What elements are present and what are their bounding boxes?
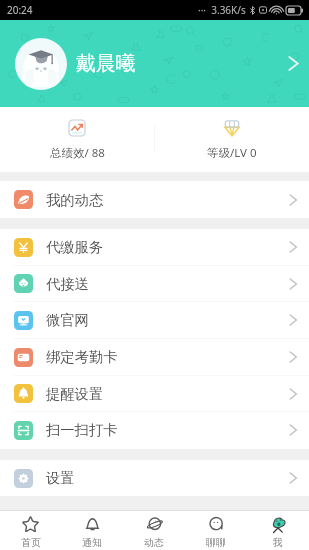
button[interactable]: 微官网 — [0, 302, 309, 338]
button[interactable]: 戴晨曦 — [0, 20, 309, 107]
button[interactable]: 绑定考勤卡 — [0, 339, 309, 375]
staticText: 我 — [273, 536, 283, 549]
staticText: 扫一扫打卡 — [46, 421, 118, 439]
button[interactable]: 提醒设置 — [0, 376, 309, 411]
button[interactable]: 设置 — [0, 460, 309, 496]
staticText: 代缴服务 — [46, 238, 104, 256]
staticText: 等级/LV 0 — [207, 145, 257, 161]
button[interactable]: 我的动态 — [0, 181, 309, 218]
staticText: 绑定考勤卡 — [46, 348, 118, 366]
staticText: 20:24 — [7, 3, 33, 17]
staticText: 代接送 — [46, 275, 89, 293]
staticText: 通知 — [82, 536, 102, 549]
staticText: ··· 3.36K/s — [198, 3, 246, 17]
staticText: 我的动态 — [46, 191, 104, 209]
button[interactable]: 首页 — [0, 511, 61, 550]
button[interactable]: 聊聊 — [185, 511, 247, 550]
staticText: 首页 — [21, 536, 41, 549]
staticText: 提醒设置 — [46, 385, 104, 403]
staticText: 聊聊 — [206, 536, 226, 549]
staticText: 微官网 — [46, 311, 89, 329]
button[interactable]: 代接送 — [0, 266, 309, 301]
button[interactable]: 总绩效/ 88 — [0, 107, 154, 172]
staticText: 戴晨曦 — [76, 51, 136, 76]
button[interactable]: 扫一扫打卡 — [0, 412, 309, 448]
staticText: 动态 — [144, 536, 164, 549]
button[interactable]: 通知 — [61, 511, 123, 550]
button[interactable]: 动态 — [123, 511, 185, 550]
staticText: 总绩效/ 88 — [50, 145, 105, 161]
button[interactable]: 我 — [247, 511, 309, 550]
button[interactable]: 等级/LV 0 — [155, 107, 309, 172]
button[interactable]: 代缴服务 — [0, 229, 309, 265]
staticText: 设置 — [46, 469, 75, 487]
